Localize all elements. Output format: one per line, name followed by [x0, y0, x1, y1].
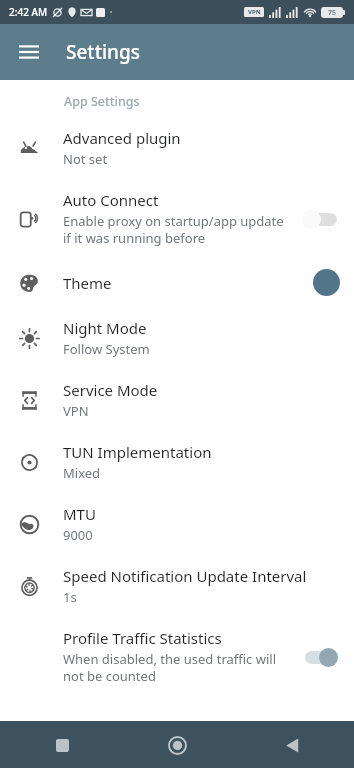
button[interactable]: Speed Notification Update Interval: [0, 555, 354, 617]
staticText: Service Mode: [63, 380, 158, 400]
staticText: App Settings: [64, 93, 140, 110]
staticText: Auto Connect: [63, 190, 159, 210]
staticText: 2:42 AM: [9, 5, 48, 19]
button[interactable]: MTU: [0, 493, 354, 555]
button[interactable]: Back: [270, 723, 314, 767]
staticText: 9000: [63, 526, 93, 544]
staticText: Not set: [63, 150, 108, 168]
staticText: Theme: [63, 273, 112, 293]
button[interactable]: TUN Implementation: [0, 431, 354, 493]
button[interactable]: Off: [302, 208, 340, 230]
staticText: Advanced plugin: [63, 128, 181, 148]
staticText: 75: [328, 8, 337, 18]
button[interactable]: Recent apps: [40, 723, 84, 767]
button[interactable]: Home: [155, 723, 199, 767]
staticText: Speed Notification Update Interval: [63, 566, 307, 586]
staticText: Settings: [66, 39, 140, 65]
button[interactable]: Night Mode: [0, 307, 354, 369]
staticText: 1s: [63, 588, 77, 606]
staticText: TUN Implementation: [63, 442, 212, 462]
staticText: Profile Traffic Statistics: [63, 628, 222, 648]
staticText: MTU: [63, 504, 96, 524]
button[interactable]: Open navigation menu: [6, 29, 52, 75]
button[interactable]: On: [302, 646, 340, 668]
button[interactable]: Theme: [0, 258, 354, 307]
staticText: VPN: [248, 8, 261, 16]
staticText: When disabled, the used traffic will not…: [63, 650, 294, 685]
staticText: Follow System: [63, 340, 150, 358]
button[interactable]: Profile Traffic Statistics: [0, 617, 354, 696]
staticText: Enable proxy on startup/app update if it…: [63, 212, 294, 247]
button[interactable]: Service Mode: [0, 369, 354, 431]
button[interactable]: Advanced plugin: [0, 117, 354, 179]
staticText: VPN: [63, 402, 89, 420]
staticText: Night Mode: [63, 318, 147, 338]
button[interactable]: Auto Connect: [0, 179, 354, 258]
staticText: Mixed: [63, 464, 101, 482]
